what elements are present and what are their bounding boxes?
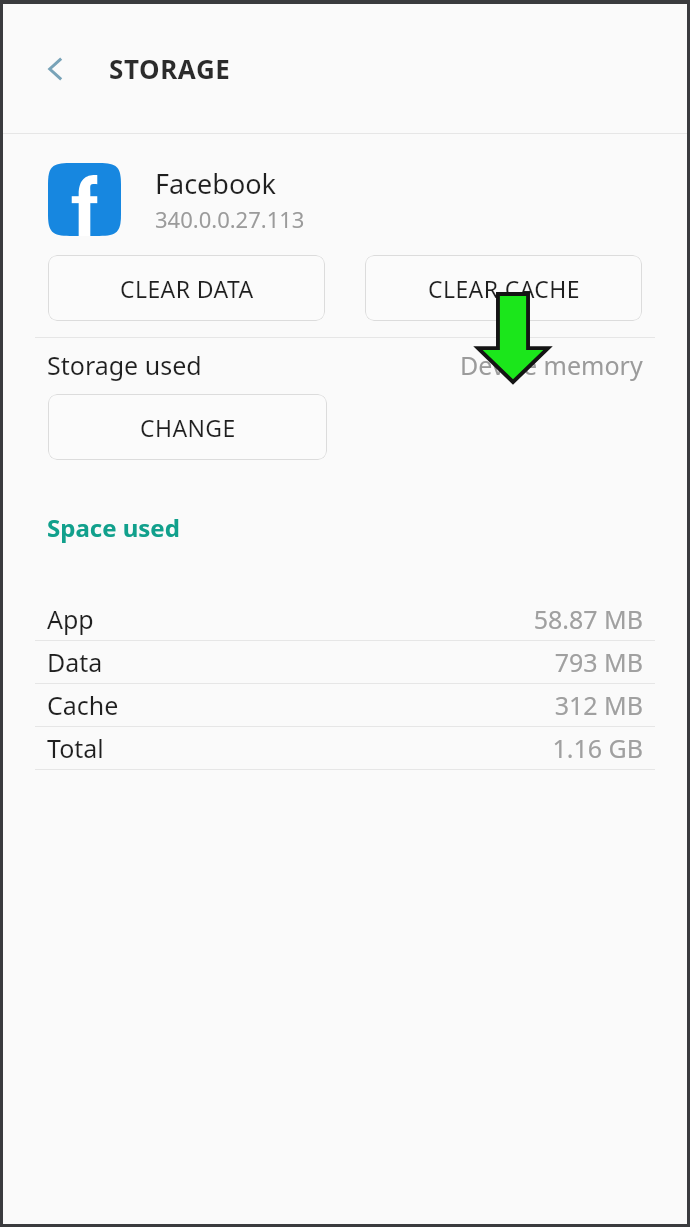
staticText: 58.87 MB	[94, 602, 643, 636]
button[interactable]: CLEAR CACHE	[365, 255, 642, 321]
staticText: Cache	[47, 688, 119, 722]
button[interactable]: Total	[3, 727, 687, 769]
staticText: 1.16 GB	[104, 731, 643, 765]
button[interactable]: App	[3, 598, 687, 640]
button[interactable]: CLEAR DATA	[48, 255, 325, 321]
staticText: CHANGE	[140, 412, 236, 443]
staticText: 340.0.0.27.113	[155, 204, 305, 234]
staticText: Space used	[47, 511, 180, 544]
staticText: Storage used	[47, 348, 202, 382]
staticText: App	[47, 602, 94, 636]
staticText: STORAGE	[109, 51, 231, 86]
button[interactable]: Data	[3, 641, 687, 683]
staticText: CLEAR DATA	[120, 273, 254, 304]
staticText: Device memory	[460, 348, 643, 382]
staticText: Facebook	[155, 165, 277, 202]
button[interactable]: CHANGE	[48, 394, 327, 460]
button[interactable]: Back	[25, 38, 87, 100]
staticText: 312 MB	[119, 688, 643, 722]
staticText: Total	[47, 731, 104, 765]
button[interactable]: Cache	[3, 684, 687, 726]
staticText: CLEAR CACHE	[428, 273, 580, 304]
staticText: Data	[47, 645, 103, 679]
staticText: 793 MB	[103, 645, 643, 679]
